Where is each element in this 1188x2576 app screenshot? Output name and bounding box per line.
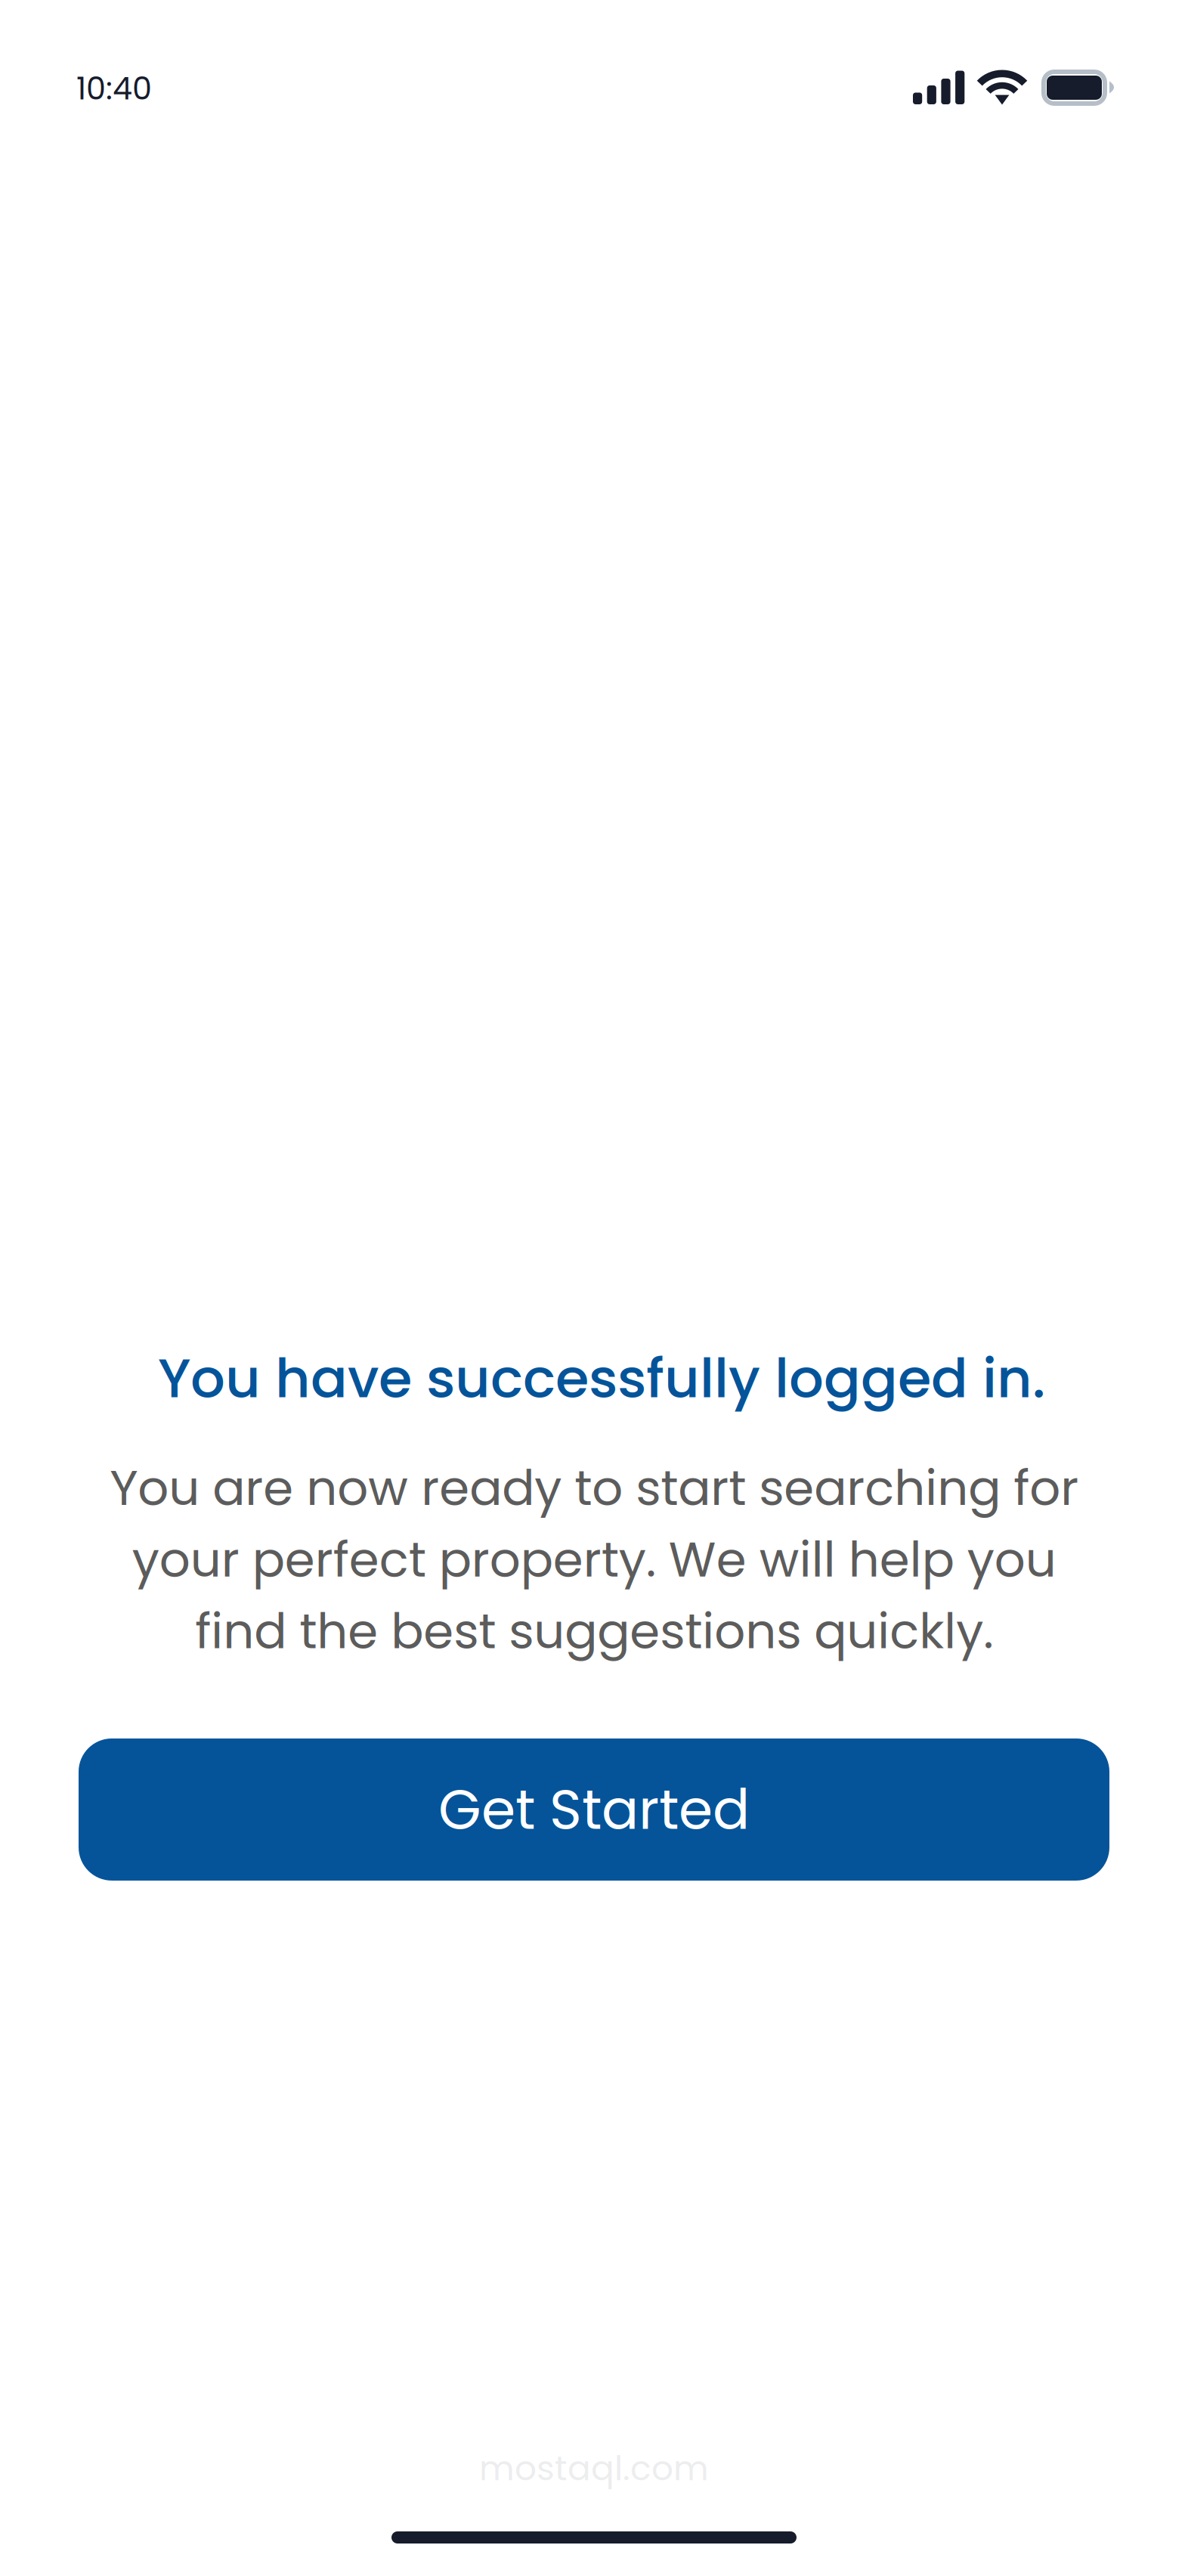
staticText: Get Started <box>438 1771 750 1848</box>
staticText: You are now ready to start searching for… <box>110 1454 1078 1665</box>
staticText: mostaql.com <box>479 2444 709 2492</box>
button[interactable]: Get Started <box>79 1738 1109 1881</box>
staticText: You have successfully logged in. <box>158 1340 1045 1416</box>
staticText: 10:40 <box>76 67 152 110</box>
